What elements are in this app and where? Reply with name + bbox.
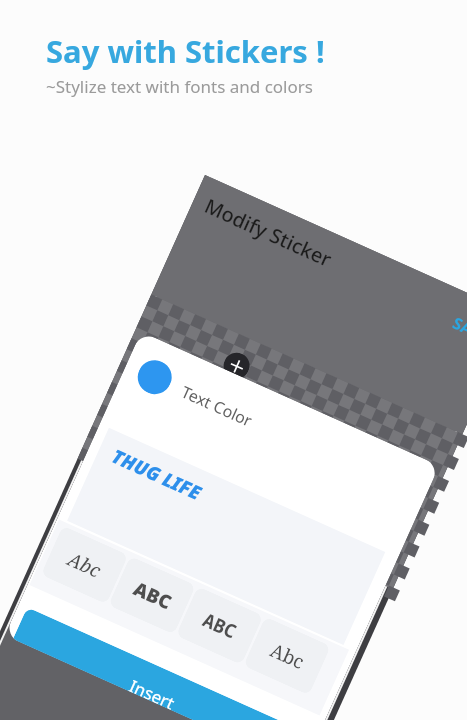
staticText: ~Stylize text with fonts and colors (46, 75, 313, 98)
button[interactable]: SAVE (449, 312, 467, 348)
button[interactable]: ABC (108, 556, 196, 635)
button[interactable]: Abc (243, 616, 331, 695)
staticText: Say with Stickers ! (46, 30, 325, 72)
staticText: THUG LIFE (108, 443, 206, 506)
staticText: Abc (64, 546, 105, 584)
staticText: Text Color (178, 381, 256, 432)
staticText: Modify Sticker (200, 192, 336, 273)
staticText: ABC (199, 607, 241, 645)
button[interactable]: Text Color (132, 355, 177, 400)
staticText: ABC (129, 576, 176, 615)
button[interactable]: Abc (41, 525, 128, 604)
staticText: Insert (128, 674, 179, 710)
button[interactable]: Insert (13, 607, 301, 720)
button[interactable]: ABC (176, 586, 263, 665)
staticText: Abc (266, 637, 309, 675)
button[interactable]: Remove sticker (219, 348, 254, 383)
